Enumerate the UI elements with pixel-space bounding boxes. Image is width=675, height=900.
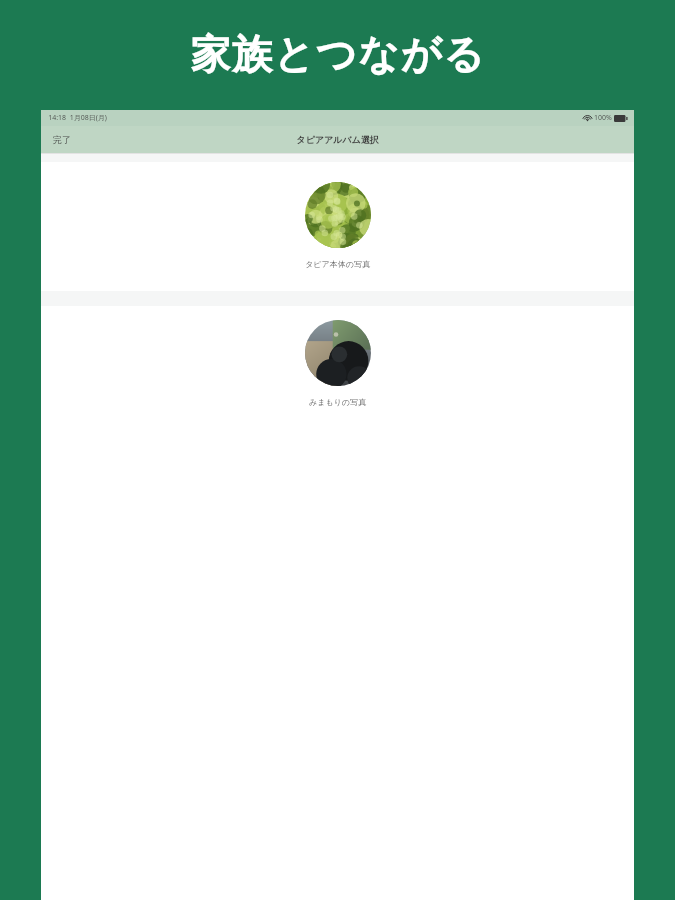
staticText: タピアアルバム選択 — [296, 134, 379, 145]
button[interactable]: 完了 — [49, 130, 75, 149]
staticText: 家族とつながる — [190, 29, 486, 79]
staticText: 100% — [594, 113, 612, 123]
staticText: 完了 — [53, 134, 71, 145]
staticText: みまもりの写真 — [309, 397, 366, 407]
staticText: タピア本体の写真 — [305, 259, 370, 269]
button[interactable]: タピア本体の写真 — [41, 162, 634, 291]
other: タピア本体の写真 — [305, 182, 371, 248]
staticText: 14:18 1月08日(月) — [48, 113, 107, 123]
button[interactable]: みまもりの写真 — [41, 306, 634, 425]
other: みまもりの写真 — [305, 320, 371, 386]
